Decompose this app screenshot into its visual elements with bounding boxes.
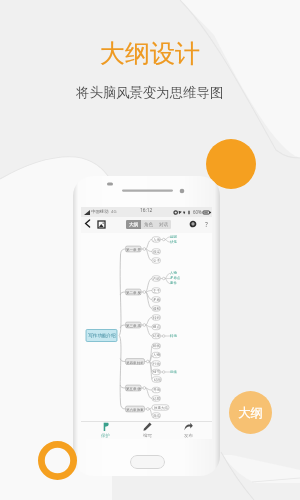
staticText: 60% — [193, 209, 202, 215]
button[interactable]: Help — [203, 220, 209, 229]
staticText: 将头脑风景变为思维导图 — [76, 84, 224, 101]
staticText: 第四章 转折再起 — [126, 360, 144, 365]
staticText: 大纲 — [238, 405, 263, 421]
staticText: 人物 — [170, 271, 177, 275]
staticText: 伏笔 — [170, 240, 177, 244]
staticText: 大纲 — [129, 222, 139, 228]
button[interactable]: 对话 — [156, 220, 171, 229]
staticText: 16:12 — [140, 207, 153, 214]
staticText: 第一章 开头 — [126, 247, 141, 252]
staticText: 保护 — [101, 433, 110, 439]
staticText: 矛盾 — [153, 298, 160, 302]
button[interactable]: 角色 — [141, 220, 156, 229]
staticText: 转场 — [170, 334, 177, 338]
staticText: 转折 — [153, 316, 160, 320]
staticText: 大纲设计 — [100, 38, 200, 69]
button[interactable]: Home — [130, 455, 165, 469]
staticText: 写作功能介绍 — [88, 333, 116, 339]
button[interactable]: 发布 — [170, 422, 206, 439]
button[interactable]: Back — [85, 220, 90, 227]
staticText: 发布 — [184, 433, 193, 439]
staticText: ? — [205, 220, 208, 229]
staticText: 中国移动 — [91, 209, 109, 215]
staticText: 人物 — [153, 353, 160, 357]
button[interactable]: 大纲 — [126, 220, 141, 229]
other: decorative ring — [38, 441, 77, 480]
button[interactable]: 编写 — [129, 422, 165, 439]
staticText: 第六章 故事结局 — [126, 407, 144, 412]
staticText: 故事大结局 — [153, 406, 169, 410]
staticText: 起因 — [170, 235, 177, 239]
staticText: 引子 — [153, 259, 160, 263]
staticText: 第五章 收尾 — [126, 386, 141, 391]
staticText: 结局 — [153, 397, 160, 401]
staticText: 情节 — [153, 370, 160, 374]
other: decorative dot — [206, 139, 256, 189]
staticText: 结段 — [154, 378, 161, 382]
staticText: 后续 — [170, 370, 177, 374]
staticText: 暗线 — [153, 344, 160, 348]
staticText: 第三章 高潮 — [126, 323, 141, 328]
staticText: 缓和 — [153, 307, 160, 311]
staticText: 爆点 — [153, 325, 160, 329]
staticText: 入场 — [153, 238, 160, 242]
staticText: 角色 — [144, 222, 154, 228]
staticText: 主干 — [153, 289, 160, 293]
staticText: 开场 — [153, 388, 160, 392]
staticText: 事件 — [170, 281, 177, 285]
staticText: 设定 — [153, 250, 160, 254]
staticText: 归结 — [153, 414, 160, 418]
button[interactable]: Image — [98, 221, 105, 228]
staticText: 结束 — [153, 334, 160, 338]
staticText: 4G — [111, 209, 117, 215]
staticText: 内容 — [153, 277, 160, 281]
staticText: 对话 — [159, 222, 169, 228]
staticText: 行动 — [153, 362, 160, 366]
staticText: 编写 — [143, 433, 152, 439]
staticText: 第二章 发展 — [126, 290, 141, 295]
button[interactable]: Settings — [190, 221, 196, 227]
staticText: 矛盾点 — [170, 276, 181, 280]
button[interactable]: 保护 — [87, 422, 123, 439]
